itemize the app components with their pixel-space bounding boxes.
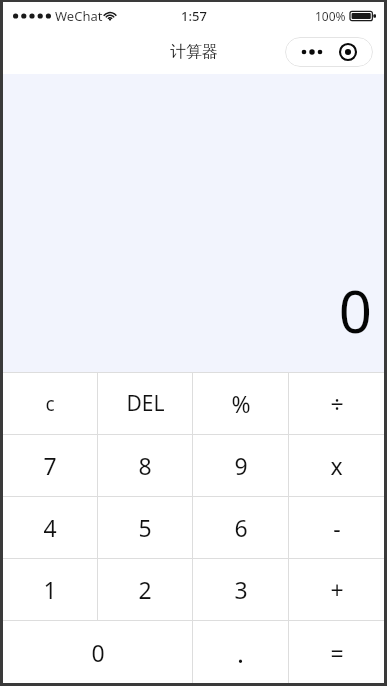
staticText: 2 <box>138 574 152 605</box>
staticText: c <box>45 391 55 417</box>
button[interactable]: 5 <box>98 497 192 558</box>
staticText: 1:57 <box>181 7 207 25</box>
staticText: 计算器 <box>170 42 218 62</box>
button[interactable]: Mini program menu <box>285 37 373 67</box>
button[interactable]: - <box>289 497 384 558</box>
button[interactable]: c <box>3 373 97 434</box>
button[interactable]: 7 <box>3 435 97 496</box>
staticText: . <box>237 635 244 670</box>
button[interactable]: DEL <box>98 373 192 434</box>
staticText: 7 <box>43 450 57 481</box>
staticText: ÷ <box>330 388 344 419</box>
button[interactable]: 4 <box>3 497 97 558</box>
button[interactable]: 8 <box>98 435 192 496</box>
staticText: x <box>330 450 343 481</box>
button[interactable]: 6 <box>193 497 288 558</box>
staticText: 5 <box>138 512 152 543</box>
button[interactable]: . <box>193 621 288 683</box>
staticText: 0 <box>91 637 105 668</box>
button[interactable]: % <box>193 373 288 434</box>
staticText: 1 <box>43 574 57 605</box>
staticText: - <box>333 512 341 543</box>
button[interactable]: x <box>289 435 384 496</box>
button[interactable]: 3 <box>193 559 288 620</box>
button[interactable]: 2 <box>98 559 192 620</box>
staticText: 6 <box>234 512 248 543</box>
button[interactable]: 1 <box>3 559 97 620</box>
staticText: % <box>231 388 251 419</box>
staticText: 9 <box>234 450 248 481</box>
staticText: 8 <box>138 450 152 481</box>
staticText: WeChat <box>55 7 103 25</box>
staticText: 100% <box>315 8 346 24</box>
button[interactable]: + <box>289 559 384 620</box>
staticText: 0 <box>338 271 372 350</box>
button[interactable]: 0 <box>3 621 192 683</box>
button[interactable]: ÷ <box>289 373 384 434</box>
button[interactable]: = <box>289 621 384 683</box>
staticText: = <box>330 637 344 668</box>
staticText: 4 <box>43 512 57 543</box>
button[interactable]: 9 <box>193 435 288 496</box>
staticText: + <box>330 574 344 605</box>
staticText: DEL <box>126 389 165 418</box>
staticText: 3 <box>234 574 248 605</box>
